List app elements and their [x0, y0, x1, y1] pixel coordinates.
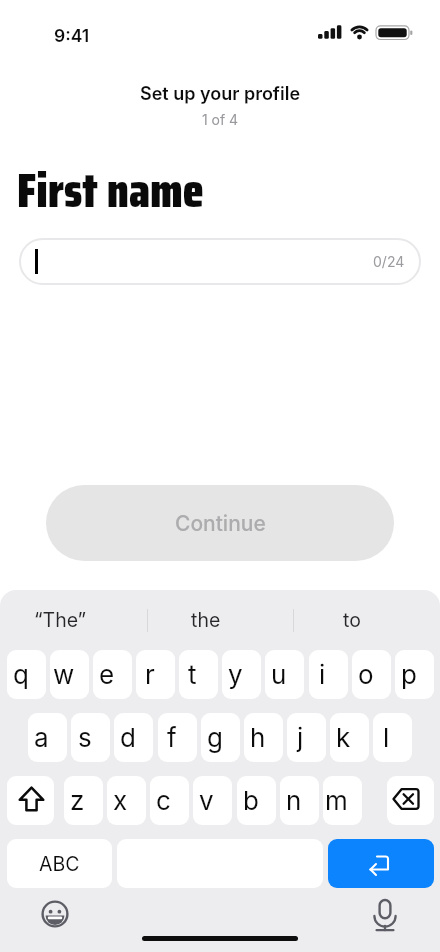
- staticText: w: [53, 659, 75, 690]
- staticText: h: [250, 722, 266, 753]
- button[interactable]: j: [287, 713, 326, 762]
- button[interactable]: k: [330, 713, 369, 762]
- button[interactable]: t: [179, 650, 218, 699]
- button[interactable]: [387, 776, 434, 825]
- staticText: Continue: [175, 511, 266, 536]
- button[interactable]: [363, 891, 407, 935]
- button[interactable]: y: [222, 650, 261, 699]
- button[interactable]: v: [193, 776, 232, 825]
- staticText: to: [343, 608, 361, 632]
- button[interactable]: r: [136, 650, 175, 699]
- staticText: x: [113, 785, 128, 816]
- staticText: s: [78, 722, 92, 753]
- staticText: n: [286, 785, 302, 816]
- staticText: Set up your profile: [0, 83, 440, 105]
- button[interactable]: “The”: [0, 598, 146, 642]
- button[interactable]: a: [28, 713, 67, 762]
- staticText: i: [319, 659, 326, 690]
- staticText: f: [167, 722, 177, 753]
- button[interactable]: w: [50, 650, 89, 699]
- button[interactable]: x: [107, 776, 146, 825]
- staticText: d: [120, 722, 136, 753]
- staticText: a: [34, 722, 49, 753]
- staticText: g: [207, 722, 223, 753]
- button[interactable]: z: [64, 776, 103, 825]
- staticText: r: [145, 659, 155, 690]
- staticText: o: [358, 659, 374, 690]
- staticText: y: [228, 659, 243, 690]
- button[interactable]: [7, 776, 54, 825]
- button[interactable]: e: [93, 650, 132, 699]
- staticText: l: [383, 722, 390, 753]
- button[interactable]: c: [150, 776, 189, 825]
- staticText: 0/24: [373, 253, 405, 270]
- staticText: the: [191, 608, 221, 632]
- staticText: q: [13, 659, 29, 690]
- button[interactable]: 0/24: [19, 238, 421, 285]
- button[interactable]: g: [201, 713, 240, 762]
- staticText: v: [199, 785, 214, 816]
- staticText: m: [325, 785, 348, 816]
- staticText: b: [243, 785, 259, 816]
- staticText: e: [99, 659, 115, 690]
- button[interactable]: b: [237, 776, 276, 825]
- staticText: First name: [17, 152, 204, 228]
- button[interactable]: p: [395, 650, 434, 699]
- staticText: 9:41: [54, 25, 90, 46]
- button[interactable]: q: [7, 650, 46, 699]
- button[interactable]: m: [323, 776, 362, 825]
- button[interactable]: f: [158, 713, 197, 762]
- staticText: “The”: [34, 608, 87, 632]
- button[interactable]: l: [373, 713, 412, 762]
- staticText: j: [297, 722, 304, 753]
- button[interactable]: n: [280, 776, 319, 825]
- staticText: ABC: [39, 852, 80, 876]
- button[interactable]: o: [352, 650, 391, 699]
- staticText: k: [336, 722, 351, 753]
- button[interactable]: i: [309, 650, 348, 699]
- staticText: z: [70, 785, 85, 816]
- button[interactable]: s: [71, 713, 110, 762]
- button[interactable]: ABC: [7, 839, 112, 888]
- button[interactable]: Continue: [46, 485, 394, 561]
- staticText: t: [188, 659, 197, 690]
- button[interactable]: u: [265, 650, 304, 699]
- staticText: p: [401, 659, 417, 690]
- button[interactable]: h: [244, 713, 283, 762]
- staticText: 1 of 4: [0, 111, 440, 128]
- button[interactable]: d: [114, 713, 153, 762]
- staticText: u: [271, 659, 287, 690]
- button[interactable]: [33, 891, 77, 935]
- button[interactable]: [328, 839, 434, 888]
- button[interactable]: the: [147, 598, 293, 642]
- button[interactable]: to: [293, 598, 440, 642]
- staticText: c: [156, 785, 171, 816]
